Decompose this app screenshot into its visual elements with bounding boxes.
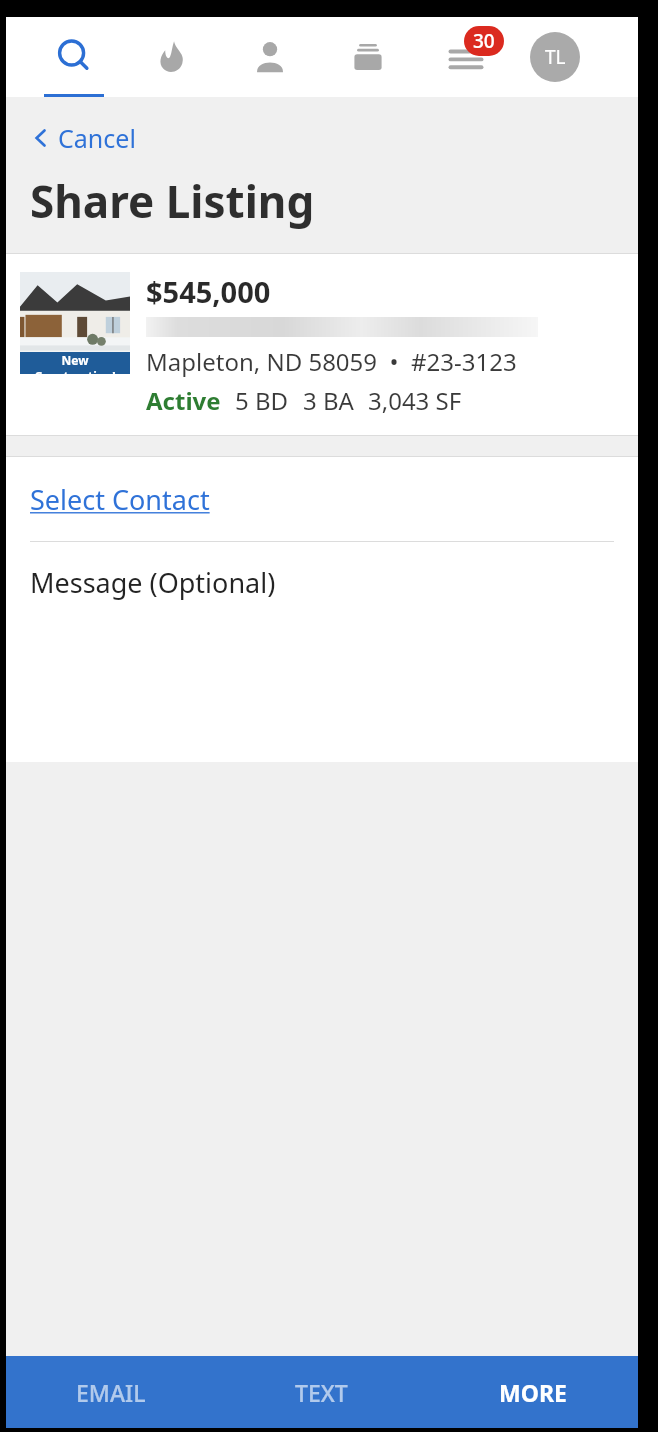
staticText: Message (Optional) bbox=[30, 564, 276, 601]
button[interactable]: TEXT bbox=[216, 1356, 427, 1428]
button[interactable]: Trending bbox=[142, 17, 202, 97]
staticText: Active bbox=[146, 384, 221, 417]
staticText: MORE bbox=[499, 1377, 567, 1408]
button[interactable]: Message (Optional) bbox=[6, 542, 638, 762]
staticText: Mapleton, ND 58059 • #23-3123 bbox=[146, 345, 517, 378]
staticText: 3,043 SF bbox=[368, 384, 462, 417]
button[interactable]: New Construction! bbox=[6, 254, 638, 435]
staticText: TL bbox=[545, 44, 566, 70]
button[interactable]: Profile bbox=[240, 17, 300, 97]
button[interactable]: EMAIL bbox=[6, 1356, 216, 1428]
staticText: 3 BA bbox=[303, 384, 354, 417]
staticText: Select Contact bbox=[30, 481, 210, 518]
button[interactable]: Search bbox=[44, 17, 104, 97]
button[interactable]: Notifications, 30 new bbox=[436, 17, 496, 97]
staticText: TEXT bbox=[295, 1377, 348, 1408]
button[interactable]: Select Contact bbox=[6, 457, 638, 541]
staticText: Cancel bbox=[58, 121, 136, 155]
staticText: 5 BD bbox=[235, 384, 289, 417]
staticText: Share Listing bbox=[30, 171, 315, 231]
button[interactable]: Cancel bbox=[30, 119, 148, 157]
button[interactable]: Saved listings bbox=[338, 17, 398, 97]
button[interactable]: MORE bbox=[427, 1356, 638, 1428]
button[interactable]: Account TL bbox=[530, 32, 580, 82]
staticText: $545,000 bbox=[146, 272, 271, 311]
staticText: EMAIL bbox=[76, 1377, 146, 1408]
staticText: New Construction! bbox=[20, 352, 130, 374]
staticText: 30 bbox=[473, 28, 495, 54]
